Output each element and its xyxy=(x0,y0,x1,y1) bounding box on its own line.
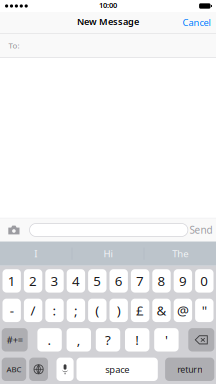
staticText: 3 xyxy=(50,272,58,290)
button[interactable]: return xyxy=(165,358,214,381)
staticText: Hi xyxy=(103,247,112,260)
staticText: " xyxy=(202,301,207,319)
button[interactable]: - xyxy=(2,299,21,322)
button[interactable]: " xyxy=(195,299,213,322)
button[interactable]: Hi xyxy=(72,241,144,266)
staticText: 8 xyxy=(157,272,165,290)
button[interactable]: 2 xyxy=(24,269,42,293)
staticText: ABC xyxy=(6,364,21,374)
button[interactable]: Delete xyxy=(188,328,214,351)
button[interactable]: 4 xyxy=(67,269,85,293)
staticText: space xyxy=(105,363,129,375)
staticText: ' xyxy=(165,331,168,349)
button[interactable]: Send xyxy=(189,218,212,241)
staticText: 4 xyxy=(72,272,80,290)
staticText: 2 xyxy=(29,272,37,290)
staticText: , xyxy=(77,331,81,349)
staticText: ) xyxy=(117,301,121,319)
staticText: 7 xyxy=(136,272,144,290)
staticText: ! xyxy=(135,331,139,349)
button[interactable]: ' xyxy=(154,328,179,351)
button[interactable]: ; xyxy=(67,299,85,322)
button[interactable]: Next keyboard xyxy=(29,358,48,381)
button[interactable]: ( xyxy=(88,299,106,322)
button[interactable]: 9 xyxy=(174,269,192,293)
button[interactable]: . xyxy=(37,328,62,351)
button[interactable]: I xyxy=(0,241,72,266)
staticText: £ xyxy=(136,301,144,319)
button[interactable]: 5 xyxy=(88,269,106,293)
staticText: ; xyxy=(74,301,78,319)
staticText: #+= xyxy=(7,334,23,346)
button[interactable]: Take photo xyxy=(8,218,19,241)
staticText: I xyxy=(34,247,37,260)
staticText: ? xyxy=(105,331,111,349)
staticText: Send xyxy=(189,223,212,237)
staticText: ( xyxy=(95,301,99,319)
staticText: 6 xyxy=(115,272,123,290)
button[interactable]: : xyxy=(45,299,64,322)
button[interactable]: space xyxy=(76,358,158,381)
button[interactable]: 7 xyxy=(131,269,149,293)
button[interactable]: The xyxy=(144,241,216,266)
staticText: : xyxy=(52,301,56,319)
staticText: 1 xyxy=(8,272,16,290)
staticText: @ xyxy=(177,301,189,319)
button[interactable]: 3 xyxy=(45,269,64,293)
staticText: . xyxy=(48,331,52,349)
button[interactable]: ABC xyxy=(2,358,26,381)
button[interactable]: 0 xyxy=(195,269,213,293)
button[interactable]: 8 xyxy=(152,269,171,293)
staticText: Cancel xyxy=(182,16,210,29)
button[interactable]: @ xyxy=(174,299,192,322)
button[interactable]: 6 xyxy=(109,269,128,293)
staticText: return xyxy=(177,363,202,375)
staticText: 0 xyxy=(200,272,208,290)
button[interactable]: / xyxy=(24,299,42,322)
staticText: - xyxy=(10,301,14,319)
button[interactable]: Dictate xyxy=(56,358,74,381)
staticText: / xyxy=(31,301,36,319)
button[interactable]: ? xyxy=(96,328,120,351)
button[interactable]: ) xyxy=(109,299,128,322)
staticText: & xyxy=(156,301,166,319)
staticText: 10:00 xyxy=(99,0,117,10)
button[interactable]: 1 xyxy=(2,269,21,293)
button[interactable]: ! xyxy=(125,328,149,351)
button[interactable]: £ xyxy=(131,299,149,322)
staticText: 9 xyxy=(179,272,187,290)
staticText: The xyxy=(172,247,188,260)
staticText: 5 xyxy=(93,272,101,290)
staticText: To: xyxy=(8,40,19,50)
button[interactable]: , xyxy=(67,328,91,351)
button[interactable]: #+= xyxy=(2,328,28,351)
button[interactable]: To: xyxy=(0,34,216,57)
staticText: New Message xyxy=(77,15,139,28)
button[interactable]: Cancel xyxy=(177,12,216,33)
button[interactable]: & xyxy=(152,299,171,322)
